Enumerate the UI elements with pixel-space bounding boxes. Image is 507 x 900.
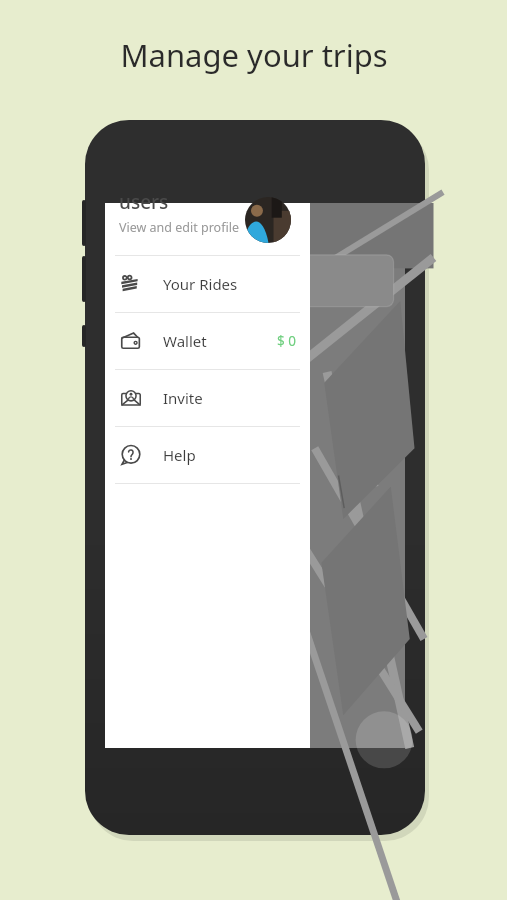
button[interactable]: Your Rides bbox=[105, 256, 310, 312]
staticText: View and edit profile bbox=[119, 219, 239, 236]
other: Help bbox=[120, 444, 142, 466]
button[interactable]: users bbox=[105, 203, 310, 255]
other: Wallet bbox=[120, 330, 142, 352]
staticText: Wallet bbox=[163, 331, 207, 351]
other: Invite bbox=[120, 387, 142, 409]
button[interactable]: Invite bbox=[105, 370, 310, 426]
staticText: Manage your trips bbox=[120, 34, 388, 76]
staticText: users bbox=[119, 189, 169, 215]
staticText: Help bbox=[163, 445, 196, 465]
button[interactable]: Wallet bbox=[105, 313, 310, 369]
other: Your Rides bbox=[120, 273, 142, 295]
staticText: Your Rides bbox=[163, 274, 238, 294]
button[interactable]: Help bbox=[105, 427, 310, 483]
staticText: $ 0 bbox=[277, 332, 296, 350]
staticText: Invite bbox=[163, 388, 203, 408]
